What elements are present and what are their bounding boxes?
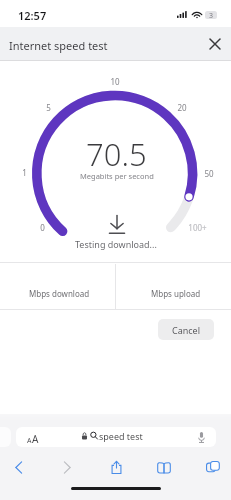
button[interactable]: Cancel <box>158 319 214 340</box>
staticText: Internet speed test <box>9 38 108 53</box>
staticText: Testing download... <box>75 238 157 250</box>
staticText: 70.5 <box>86 133 147 173</box>
staticText: Mbps download <box>29 288 90 299</box>
button[interactable]: Mbps upload <box>136 286 216 300</box>
button[interactable]: Bookmarks <box>151 455 177 479</box>
staticText: 10 <box>110 76 120 87</box>
staticText: 12:57 <box>18 8 47 23</box>
staticText: Megabits per second <box>80 171 154 181</box>
staticText: speed test <box>99 430 143 442</box>
staticText: 5 <box>46 102 51 113</box>
staticText: A <box>27 436 32 446</box>
staticText: A <box>32 432 39 446</box>
staticText: 100+ <box>188 222 207 233</box>
button[interactable]: Voice search <box>189 427 213 447</box>
staticText: 20 <box>177 102 187 113</box>
staticText: Cancel <box>172 324 201 336</box>
staticText: 50 <box>204 168 214 179</box>
staticText: 0 <box>40 222 45 233</box>
button[interactable]: Page settings <box>20 427 46 447</box>
button[interactable]: Forward <box>54 455 80 479</box>
button[interactable]: Tabs <box>200 455 226 479</box>
staticText: Mbps upload <box>151 288 201 299</box>
button[interactable]: Mbps download <box>19 286 99 300</box>
button[interactable]: Close <box>203 32 227 56</box>
staticText: 3 <box>209 11 214 19</box>
button[interactable]: Share <box>103 455 129 479</box>
button[interactable]: Back <box>5 455 31 479</box>
staticText: 1 <box>22 167 27 178</box>
button[interactable]: Page settings <box>16 427 216 447</box>
